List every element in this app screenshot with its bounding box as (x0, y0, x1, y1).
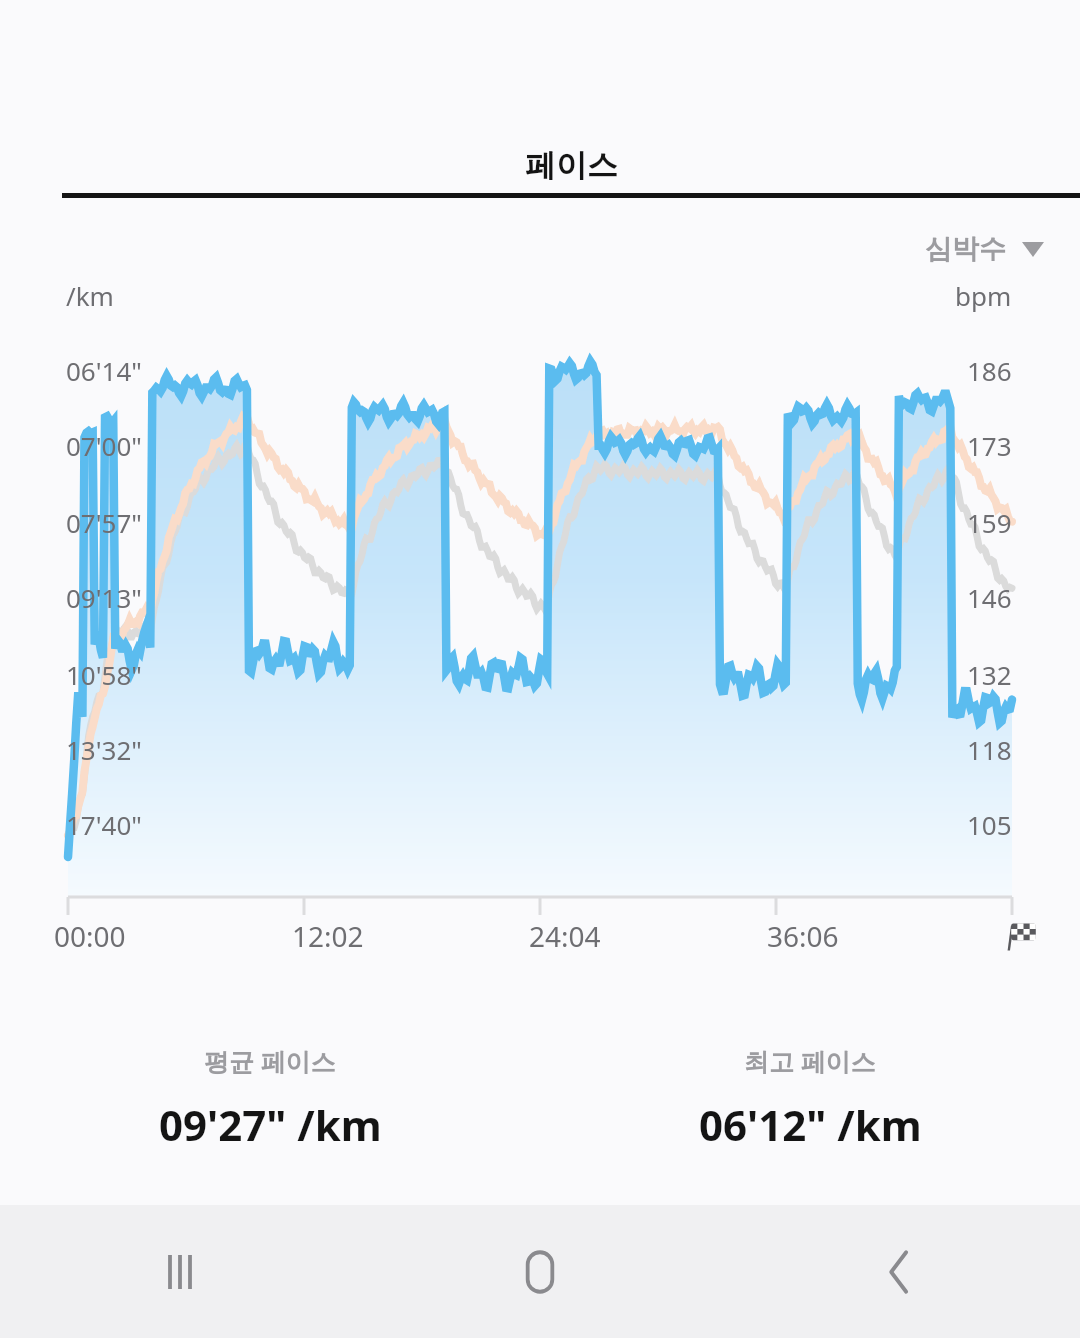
staticText: 09'27" /km (159, 1096, 382, 1153)
staticText: 146 (967, 580, 1012, 615)
button[interactable]: 심박수 (919, 226, 1050, 272)
other: Finish (1004, 918, 1040, 954)
staticText: 173 (967, 428, 1012, 463)
staticText: 10'58" (66, 657, 142, 692)
staticText: 159 (967, 505, 1012, 540)
staticText: 최고 페이스 (744, 1044, 876, 1078)
staticText: 12:02 (292, 917, 364, 955)
staticText: bpm (955, 278, 1012, 313)
staticText: 07'57" (66, 505, 142, 540)
staticText: 186 (967, 353, 1012, 388)
staticText: 17'40" (66, 807, 142, 842)
button[interactable]: Back (720, 1205, 1080, 1338)
button[interactable]: Recent apps (0, 1205, 360, 1338)
staticText: 105 (967, 807, 1012, 842)
staticText: 06'12" /km (699, 1096, 922, 1153)
button[interactable]: 페이스 (62, 146, 1080, 198)
staticText: 132 (967, 657, 1012, 692)
button[interactable]: 최고 페이스 (540, 1044, 1080, 1153)
staticText: /km (66, 278, 114, 313)
staticText: 13'32" (66, 732, 142, 767)
button[interactable]: 평균 페이스 (0, 1044, 540, 1153)
staticText: 09'13" (66, 580, 142, 615)
staticText: 00:00 (54, 917, 126, 955)
staticText: 페이스 (525, 146, 618, 185)
staticText: 06'14" (66, 353, 142, 388)
staticText: 118 (967, 732, 1012, 767)
staticText: 36:06 (767, 917, 839, 955)
staticText: 심박수 (925, 232, 1006, 266)
staticText: 24:04 (529, 917, 601, 955)
button[interactable]: Home (360, 1205, 720, 1338)
staticText: 평균 페이스 (204, 1044, 336, 1078)
staticText: 07'00" (66, 428, 142, 463)
